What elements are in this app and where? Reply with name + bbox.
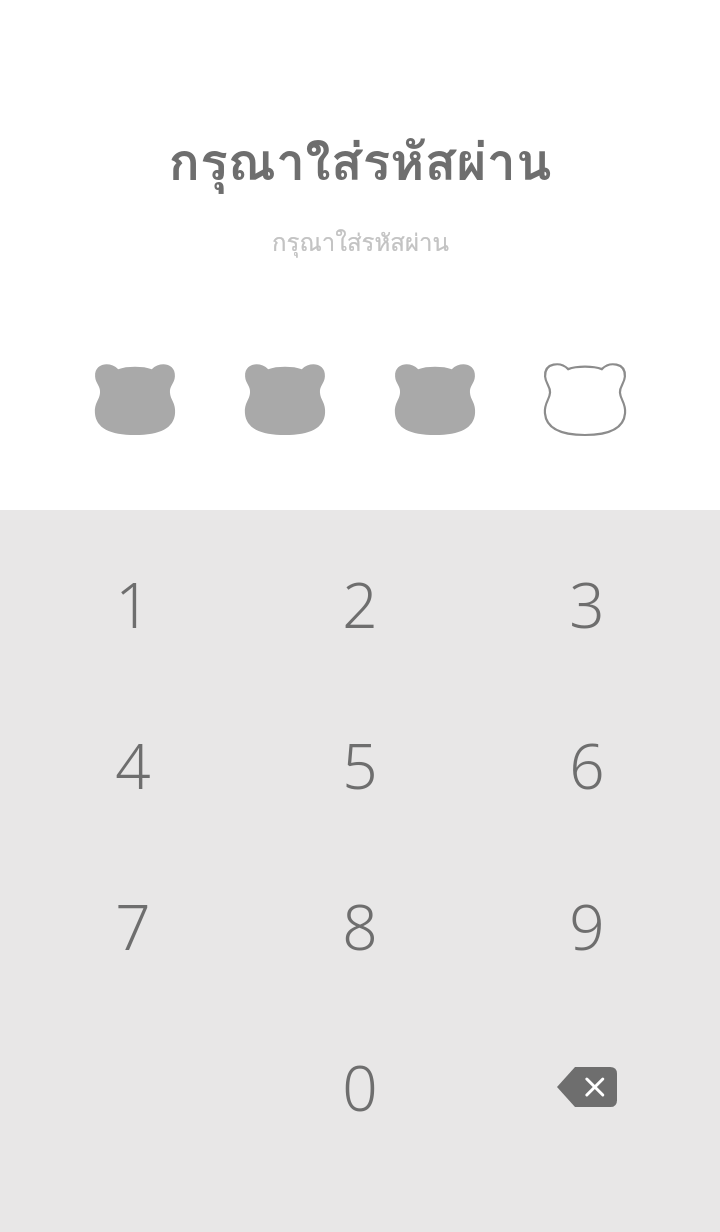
staticText: 7 [115,884,151,968]
staticText: กรุณาใส่รหัสผ่าน [168,120,552,203]
button[interactable]: 3 [473,523,700,684]
button[interactable]: 8 [246,845,473,1006]
button[interactable]: 6 [473,684,700,845]
staticText: 5 [342,723,378,807]
staticText: 8 [342,884,378,968]
button[interactable]: 7 [19,845,246,1006]
button[interactable]: 5 [246,684,473,845]
button[interactable]: 0 [246,1006,473,1167]
button[interactable]: 9 [473,845,700,1006]
button[interactable]: 4 [19,684,246,845]
staticText: 6 [569,723,605,807]
staticText: 1 [115,562,151,646]
staticText: 3 [569,562,605,646]
button[interactable]: 1 [19,523,246,684]
staticText: 4 [115,723,151,807]
button[interactable]: Backspace [473,1006,700,1167]
staticText: กรุณาใส่รหัสผ่าน [272,223,449,261]
staticText: 0 [342,1045,378,1129]
button[interactable]: 2 [246,523,473,684]
staticText: 9 [569,884,605,968]
staticText: 2 [342,562,378,646]
